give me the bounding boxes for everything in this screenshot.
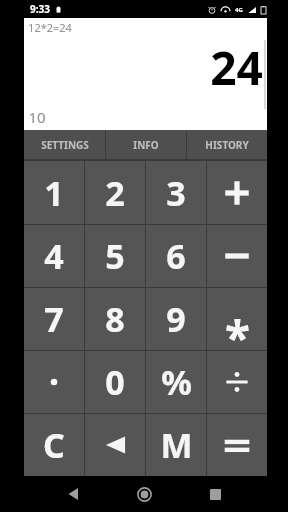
button[interactable]: 1 bbox=[24, 161, 84, 224]
staticText: 7 bbox=[44, 296, 64, 342]
button[interactable]: 2 bbox=[85, 161, 145, 224]
button[interactable]: Back bbox=[60, 481, 86, 507]
staticText: 1 bbox=[44, 170, 64, 216]
staticText: SETTINGS bbox=[41, 138, 89, 152]
staticText: 9:33 bbox=[30, 2, 50, 16]
staticText: 2 bbox=[105, 170, 125, 216]
button[interactable]: 8 bbox=[85, 288, 145, 350]
staticText: INFO bbox=[133, 138, 159, 152]
button[interactable]: * bbox=[207, 288, 267, 350]
button[interactable]: 6 bbox=[146, 225, 206, 287]
button[interactable]: 7 bbox=[24, 288, 84, 350]
staticText: 8 bbox=[105, 296, 125, 342]
staticText: HISTORY bbox=[205, 138, 249, 152]
staticText: * bbox=[225, 306, 250, 350]
button[interactable]: 5 bbox=[85, 225, 145, 287]
button[interactable]: INFO bbox=[106, 130, 186, 159]
button[interactable]: 0 bbox=[85, 351, 145, 413]
staticText: 4 bbox=[44, 233, 64, 279]
button[interactable]: C bbox=[24, 414, 84, 476]
button[interactable]: 4 bbox=[24, 225, 84, 287]
staticText: 24 bbox=[210, 36, 263, 99]
staticText: M bbox=[160, 422, 193, 468]
staticText: 5 bbox=[105, 233, 125, 279]
staticText: C bbox=[43, 422, 65, 468]
button[interactable]: % bbox=[146, 351, 206, 413]
button[interactable]: M bbox=[146, 414, 206, 476]
button[interactable]: = bbox=[207, 414, 267, 476]
button[interactable]: 9 bbox=[146, 288, 206, 350]
staticText: 3 bbox=[166, 170, 186, 216]
staticText: 10 bbox=[28, 107, 46, 127]
button[interactable]: Recents bbox=[202, 481, 228, 507]
staticText: 9 bbox=[166, 296, 186, 342]
button[interactable]: . bbox=[24, 351, 84, 413]
staticText: 12*2=24 bbox=[28, 20, 72, 35]
button[interactable]: 3 bbox=[146, 161, 206, 224]
button[interactable]: Home bbox=[131, 481, 157, 507]
button[interactable]: ÷ bbox=[207, 351, 267, 413]
staticText: % bbox=[161, 359, 192, 405]
staticText: 4G bbox=[235, 6, 243, 14]
button[interactable]: + bbox=[207, 161, 267, 224]
button[interactable]: HISTORY bbox=[187, 130, 267, 159]
button[interactable]: - bbox=[207, 225, 267, 287]
staticText: 0 bbox=[105, 359, 125, 405]
button[interactable]: < bbox=[85, 414, 145, 476]
staticText: 6 bbox=[166, 233, 186, 279]
button[interactable]: SETTINGS bbox=[24, 130, 105, 159]
